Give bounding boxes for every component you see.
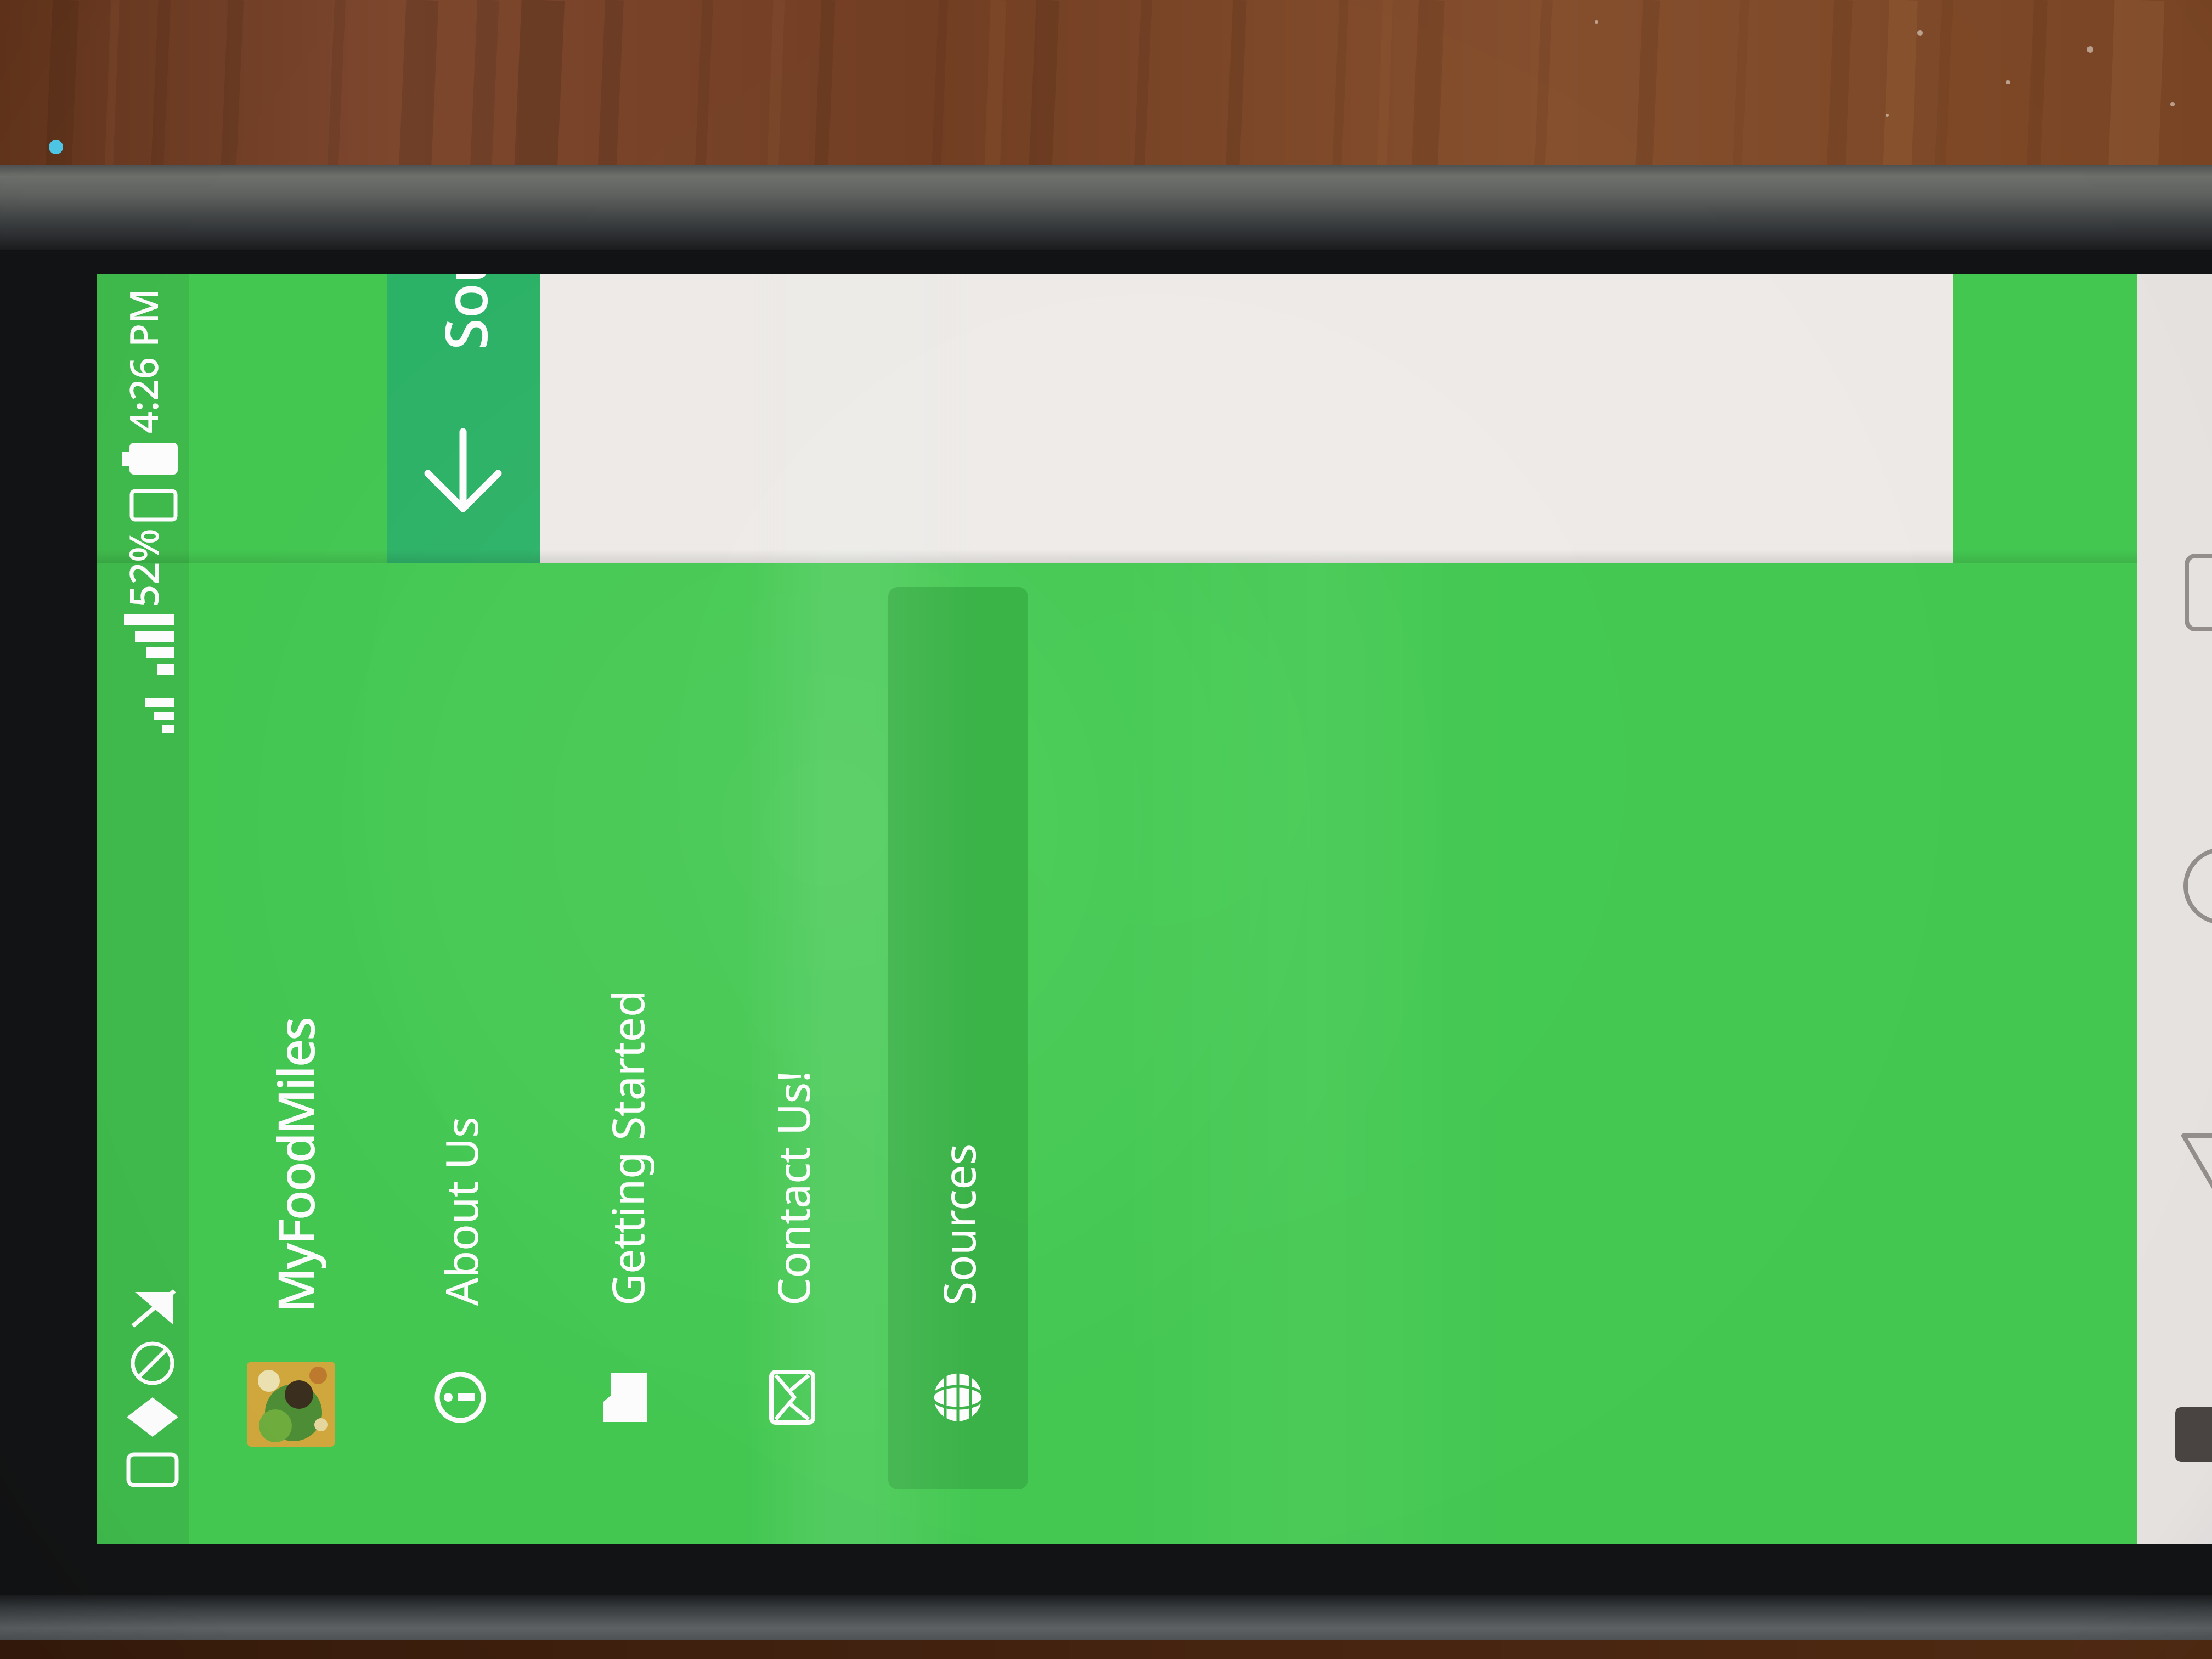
staticText: Sources: [426, 274, 503, 350]
button[interactable]: [2181, 1122, 2212, 1215]
button[interactable]: Contact Us!: [722, 587, 862, 1511]
button[interactable]: Getting Started: [556, 587, 697, 1511]
staticText: About Us: [431, 1116, 490, 1306]
staticText: 52%: [116, 528, 170, 607]
button[interactable]: [420, 425, 508, 513]
button[interactable]: About Us: [390, 587, 531, 1511]
staticText: 4:26 PM: [117, 291, 169, 433]
staticText: Contact Us!: [763, 1070, 822, 1306]
staticText: MyFoodMiles: [262, 1018, 329, 1313]
button[interactable]: [2181, 845, 2212, 927]
staticText: Getting Started: [597, 990, 657, 1306]
staticText: Sources: [928, 1143, 988, 1306]
button[interactable]: [2183, 552, 2212, 633]
button[interactable]: Sources: [888, 587, 1028, 1511]
